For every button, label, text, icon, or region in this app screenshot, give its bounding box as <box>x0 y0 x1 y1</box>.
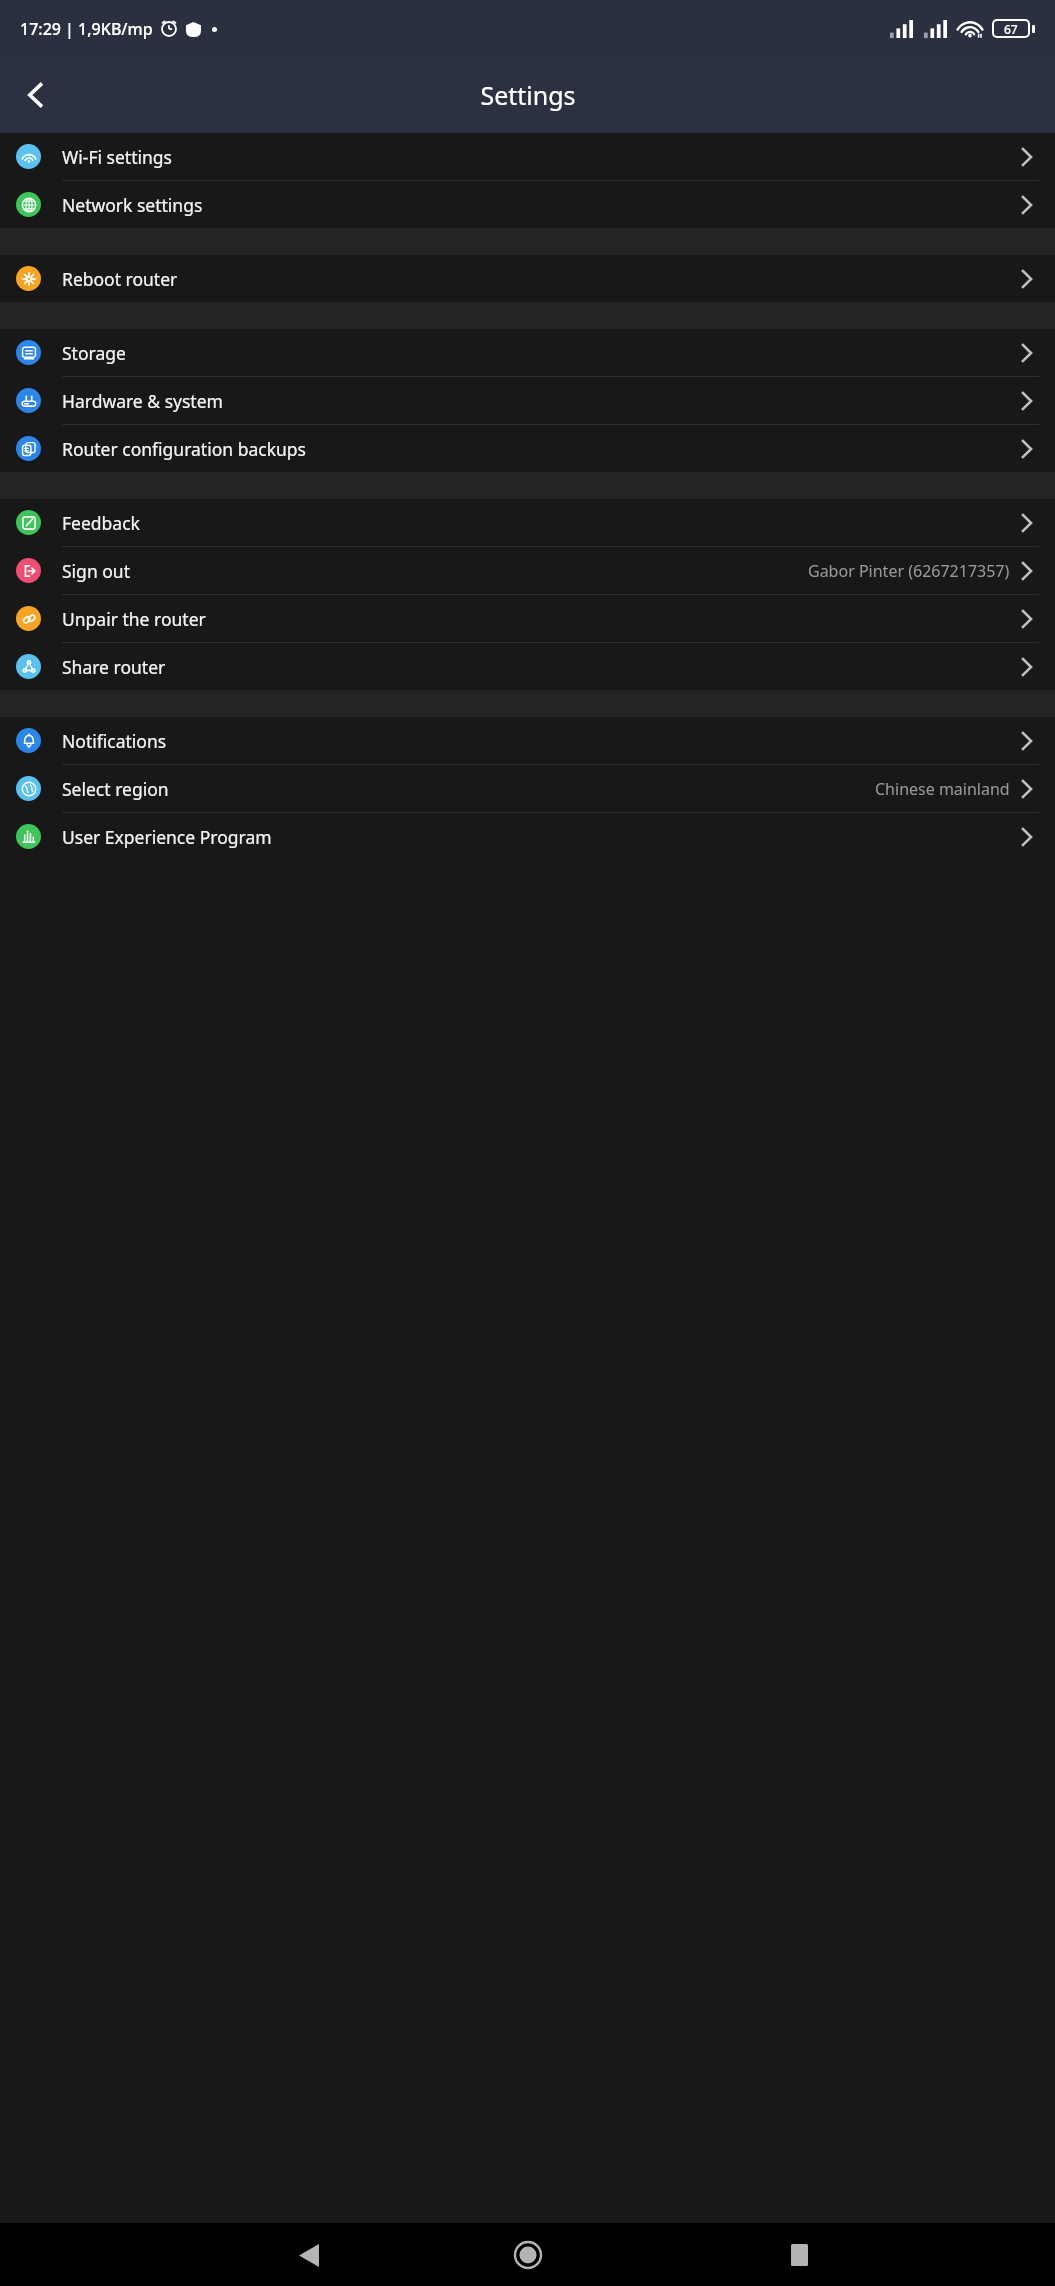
button[interactable]: Home <box>500 2227 556 2283</box>
staticText: Unpair the router <box>62 607 206 631</box>
staticText: User Experience Program <box>62 825 272 849</box>
staticText: 67 <box>1004 21 1018 36</box>
button[interactable]: Recents <box>771 2227 827 2283</box>
staticText: Router configuration backups <box>62 437 306 461</box>
button[interactable]: Share router <box>0 643 1055 690</box>
button[interactable]: Network settings <box>0 181 1055 228</box>
staticText: Sign out <box>62 559 130 583</box>
staticText: Share router <box>62 655 166 679</box>
button[interactable]: Router configuration backups <box>0 425 1055 472</box>
button[interactable]: Notifications <box>0 717 1055 764</box>
button[interactable]: User Experience Program <box>0 813 1055 860</box>
button[interactable]: Back <box>281 2227 337 2283</box>
staticText: Select region <box>62 777 169 801</box>
staticText: Feedback <box>62 511 140 535</box>
staticText: Chinese mainland <box>875 778 1010 800</box>
staticText: 17:29 | 1,9KB/mp <box>20 18 153 40</box>
button[interactable]: Wi-Fi settings <box>0 133 1055 180</box>
staticText: Hardware & system <box>62 389 223 413</box>
button[interactable]: Select region <box>0 765 1055 812</box>
staticText: Gabor Pinter (6267217357) <box>808 560 1010 582</box>
button[interactable]: Back <box>8 67 64 123</box>
button[interactable]: Reboot router <box>0 255 1055 302</box>
staticText: Wi-Fi settings <box>62 145 172 169</box>
button[interactable]: Storage <box>0 329 1055 376</box>
staticText: Reboot router <box>62 267 178 291</box>
button[interactable]: Sign out <box>0 547 1055 594</box>
button[interactable]: Feedback <box>0 499 1055 546</box>
button[interactable]: Hardware & system <box>0 377 1055 424</box>
button[interactable]: Unpair the router <box>0 595 1055 642</box>
staticText: Storage <box>62 341 126 365</box>
staticText: Network settings <box>62 193 203 217</box>
staticText: Notifications <box>62 729 167 753</box>
staticText: Settings <box>480 78 576 112</box>
